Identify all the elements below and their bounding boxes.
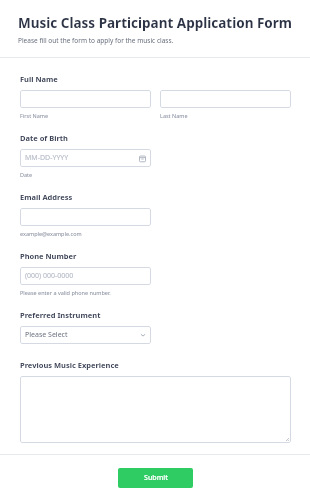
staticText: Date of Birth <box>20 133 68 143</box>
button[interactable] <box>20 90 151 108</box>
staticText: MM-DD-YYYY <box>25 153 69 163</box>
other: Expand instrument options <box>140 332 146 338</box>
other: Open calendar <box>139 155 146 162</box>
button[interactable] <box>20 208 151 226</box>
staticText: Music Class Participant Application Form <box>18 14 292 32</box>
button[interactable]: (000) 000-0000 <box>20 267 151 285</box>
button[interactable]: Submit <box>118 468 193 488</box>
staticText: Last Name <box>160 112 188 119</box>
staticText: Please enter a valid phone number. <box>20 289 111 296</box>
staticText: Phone Number <box>20 251 77 261</box>
staticText: Please fill out the form to apply for th… <box>18 36 174 45</box>
button[interactable]: MM-DD-YYYY <box>20 149 151 167</box>
button[interactable] <box>20 376 291 443</box>
staticText: Preferred Instrument <box>20 310 101 320</box>
staticText: Previous Music Experience <box>20 360 119 370</box>
staticText: First Name <box>20 112 49 119</box>
staticText: Date <box>20 171 33 178</box>
staticText: Email Address <box>20 192 73 202</box>
staticText: Please Select <box>25 330 140 340</box>
staticText: Full Name <box>20 74 58 84</box>
button[interactable] <box>160 90 291 108</box>
staticText: (000) 000-0000 <box>25 271 74 281</box>
staticText: example@example.com <box>20 230 82 237</box>
button[interactable]: Please Select <box>20 326 151 344</box>
staticText: Submit <box>144 473 168 483</box>
